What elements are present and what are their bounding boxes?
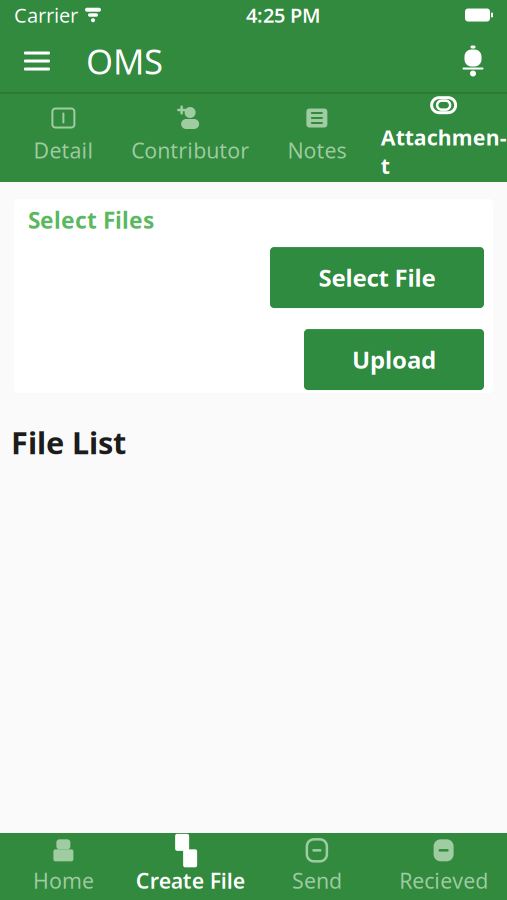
button[interactable]: Upload	[304, 329, 484, 390]
staticText: Carrier	[14, 2, 78, 28]
staticText: Contributor	[131, 136, 249, 164]
staticText: Attachment	[381, 123, 507, 180]
button[interactable]: Notes	[253, 94, 380, 182]
button[interactable]: Home	[0, 833, 127, 900]
staticText: Detail	[33, 136, 93, 164]
button[interactable]: Notifications	[449, 40, 497, 82]
staticText: Select Files	[28, 205, 154, 235]
button[interactable]: Create File	[127, 833, 254, 900]
button[interactable]: Select File	[270, 247, 484, 308]
staticText: Upload	[352, 344, 436, 375]
staticText: OMS	[86, 38, 163, 84]
staticText: Notes	[287, 136, 346, 164]
staticText: Select File	[318, 262, 435, 293]
staticText: Home	[33, 866, 94, 895]
staticText: Send	[292, 866, 342, 895]
button[interactable]: Recieved	[380, 833, 507, 900]
button[interactable]: Attachment	[380, 94, 507, 182]
button[interactable]: Detail	[0, 94, 127, 182]
button[interactable]: Contributor	[127, 94, 254, 182]
staticText: File List	[11, 422, 126, 463]
staticText: 4:25 PM	[246, 2, 321, 28]
staticText: Create File	[136, 866, 245, 895]
button[interactable]: Menu	[10, 39, 64, 83]
staticText: Recieved	[399, 866, 488, 895]
button[interactable]: Send	[253, 833, 380, 900]
